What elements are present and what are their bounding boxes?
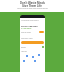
staticText: Nearby	[21, 50, 27, 52]
staticText: Fresh Veg Box	[21, 24, 38, 27]
staticText: Pickup today	[21, 31, 32, 33]
staticText: Available Donations	[21, 19, 39, 22]
staticText: Give Them Life	[22, 4, 42, 8]
staticText: 2.3 km away	[21, 27, 32, 29]
staticText: Ready	[21, 46, 26, 48]
staticText: Choose a meal	[21, 37, 33, 39]
staticText: Don't Waste Meals	[20, 1, 45, 5]
button[interactable]	[39, 31, 44, 33]
staticText: Share surplus food with people nearby	[17, 7, 48, 9]
button[interactable]	[21, 41, 44, 44]
